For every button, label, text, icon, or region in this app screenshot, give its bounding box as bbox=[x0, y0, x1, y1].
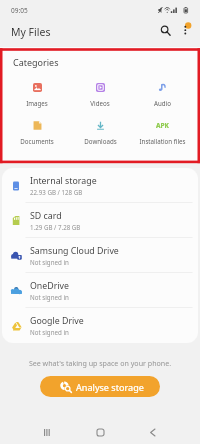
staticText: Videos bbox=[90, 99, 110, 107]
staticText: 22.93 GB / 128 GB bbox=[30, 188, 83, 196]
staticText: Analyse storage bbox=[76, 381, 144, 393]
button[interactable]: SD card bbox=[2, 203, 198, 238]
staticText: APK bbox=[156, 121, 169, 130]
button[interactable]: APK bbox=[133, 117, 191, 146]
staticText: Internal storage bbox=[30, 175, 97, 187]
button[interactable]: Recents bbox=[34, 419, 60, 444]
button[interactable]: Search bbox=[154, 19, 176, 41]
staticText: Not signed in bbox=[30, 258, 69, 266]
staticText: Not signed in bbox=[30, 293, 69, 301]
button[interactable]: Internal storage bbox=[2, 168, 198, 203]
button[interactable]: OneDrive bbox=[2, 273, 198, 308]
staticText: Installation files bbox=[139, 137, 186, 145]
staticText: Google Drive bbox=[30, 315, 84, 327]
staticText: Audio bbox=[154, 99, 171, 107]
staticText: Images bbox=[26, 99, 48, 107]
staticText: See what's taking up space on your phone… bbox=[0, 358, 200, 368]
button[interactable]: Downloads bbox=[71, 117, 129, 146]
button[interactable]: Samsung Cloud Drive bbox=[2, 238, 198, 273]
staticText: OneDrive bbox=[30, 280, 70, 292]
staticText: My Files bbox=[11, 25, 51, 39]
staticText: 1.29 GB / 7.28 GB bbox=[30, 223, 81, 231]
button[interactable]: More options bbox=[174, 19, 196, 41]
staticText: 09:05 bbox=[11, 6, 28, 15]
staticText: Documents bbox=[20, 137, 54, 145]
button[interactable]: Back bbox=[139, 419, 165, 444]
staticText: Categories bbox=[13, 56, 59, 68]
button[interactable]: Videos bbox=[71, 79, 129, 108]
staticText: SD card bbox=[30, 210, 62, 222]
button[interactable]: Documents bbox=[8, 117, 66, 146]
staticText: Not signed in bbox=[30, 328, 69, 336]
button[interactable]: Google Drive bbox=[2, 308, 198, 343]
button[interactable]: Analyse storage bbox=[40, 376, 160, 397]
button[interactable]: Images bbox=[8, 79, 66, 108]
button[interactable]: Home bbox=[87, 419, 113, 444]
staticText: Samsung Cloud Drive bbox=[30, 245, 119, 257]
button[interactable]: Audio bbox=[133, 79, 191, 108]
staticText: Downloads bbox=[84, 137, 117, 145]
